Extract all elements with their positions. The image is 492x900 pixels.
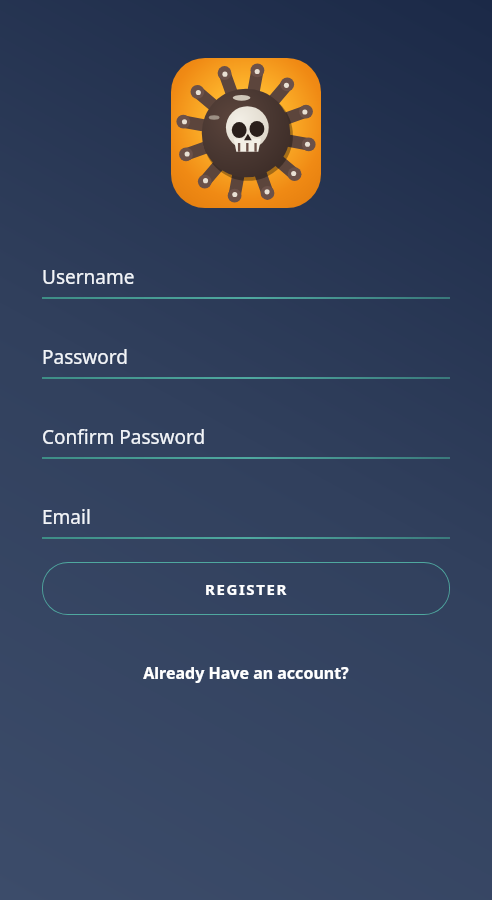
staticText: REGISTER xyxy=(205,579,288,599)
button[interactable]: Username xyxy=(42,255,450,299)
staticText: Already Have an account? xyxy=(143,662,349,684)
button[interactable]: REGISTER xyxy=(42,562,450,615)
button[interactable]: Email xyxy=(42,495,450,539)
staticText: Password xyxy=(42,344,128,370)
staticText: Username xyxy=(42,264,135,290)
button[interactable]: Already Have an account? xyxy=(0,653,492,693)
button[interactable]: Password xyxy=(42,335,450,379)
button[interactable]: Confirm Password xyxy=(42,415,450,459)
staticText: Confirm Password xyxy=(42,424,206,450)
staticText: Email xyxy=(42,504,91,530)
